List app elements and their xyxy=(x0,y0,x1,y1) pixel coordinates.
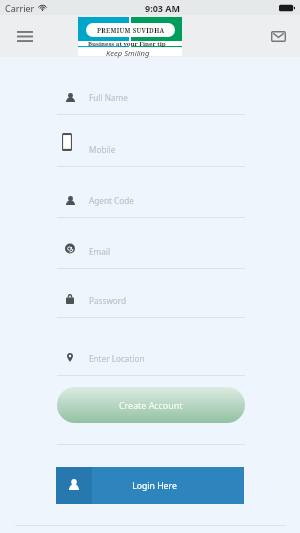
staticText: 9:03 AM xyxy=(145,2,181,14)
staticText: Mobile xyxy=(89,144,116,155)
button[interactable]: Mobile xyxy=(0,123,300,167)
staticText: Keep Smiling xyxy=(106,48,150,58)
staticText: Login Here xyxy=(132,480,177,492)
staticText: Carrier xyxy=(5,2,35,14)
button[interactable]: Mail xyxy=(265,23,291,49)
button[interactable]: Enter Location xyxy=(0,333,300,376)
staticText: PREMIUM SUVIDHA xyxy=(97,26,165,34)
button[interactable]: Email xyxy=(0,225,300,269)
button[interactable]: Full Name xyxy=(0,71,300,115)
staticText: Enter Location xyxy=(89,353,145,364)
button[interactable]: Agent Code xyxy=(0,174,300,218)
button[interactable]: Create Account xyxy=(57,387,245,423)
staticText: Full Name xyxy=(89,92,128,103)
button[interactable]: Login Here xyxy=(56,467,244,504)
staticText: Agent Code xyxy=(89,195,134,206)
staticText: Password xyxy=(89,295,127,306)
button[interactable]: Menu xyxy=(12,23,38,49)
staticText: Email xyxy=(89,246,111,257)
staticText: Create Account xyxy=(119,399,183,411)
staticText: Business at your Finer tip xyxy=(88,40,166,48)
button[interactable]: Password xyxy=(0,276,300,318)
